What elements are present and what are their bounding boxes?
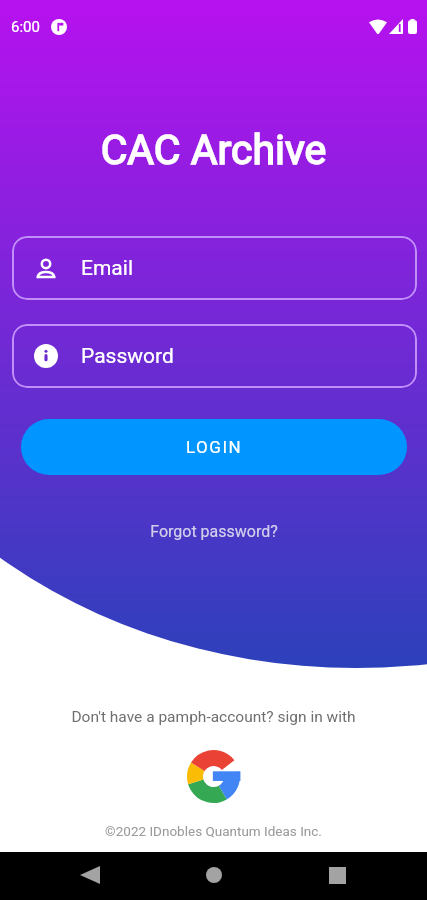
button[interactable]: Sign in with Google <box>187 750 240 803</box>
button[interactable]: Password <box>12 324 417 388</box>
staticText: Email <box>81 256 133 281</box>
button[interactable]: Recents <box>316 854 358 896</box>
button[interactable]: Forgot password? <box>145 518 282 544</box>
staticText: Don't have a pamph-account? sign in with <box>0 708 427 726</box>
staticText: CAC Archive <box>0 126 427 174</box>
staticText: Forgot password? <box>150 522 278 541</box>
staticText: Password <box>81 344 174 369</box>
staticText: LOGIN <box>186 437 243 457</box>
staticText: 6:00 <box>11 18 40 36</box>
button[interactable]: Back <box>69 854 111 896</box>
button[interactable]: LOGIN <box>21 419 407 475</box>
staticText: ©2022 IDnobles Quantum Ideas Inc. <box>0 823 427 839</box>
button[interactable]: Email <box>12 236 417 300</box>
button[interactable]: Home <box>193 854 235 896</box>
